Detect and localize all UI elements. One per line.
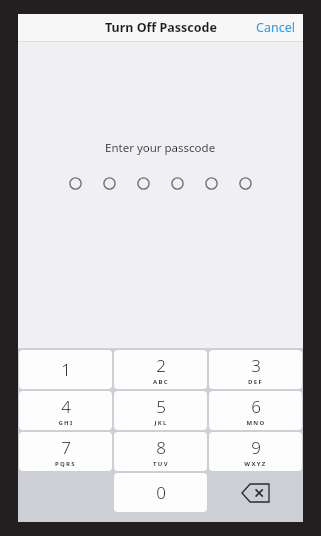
staticText: 6 [251,395,261,418]
staticText: 1 [61,358,71,381]
staticText: 9 [251,436,261,459]
button[interactable]: 1 [19,350,112,389]
staticText: Turn Off Passcode [105,19,217,36]
staticText: PQRS [55,460,76,468]
staticText: 4 [61,395,71,418]
button[interactable]: 2 [114,350,207,389]
staticText: 0 [156,481,166,504]
staticText: TUV [153,460,169,468]
staticText: ABC [153,378,169,386]
button[interactable]: 5 [114,391,207,430]
button[interactable]: 8 [114,432,207,471]
button[interactable]: 6 [209,391,302,430]
staticText: WXYZ [244,460,267,468]
button[interactable]: 7 [19,432,112,471]
staticText: MNO [246,419,266,427]
button[interactable]: Delete [208,472,303,513]
staticText: 7 [61,436,71,459]
button[interactable]: 4 [19,391,112,430]
staticText: 3 [251,354,261,377]
button[interactable]: 3 [209,350,302,389]
button[interactable]: 0 [114,473,207,512]
staticText: Enter your passcode [105,140,216,156]
staticText: 2 [156,354,166,377]
button[interactable]: 9 [209,432,302,471]
staticText: 8 [156,436,166,459]
staticText: 5 [156,395,166,418]
staticText: Cancel [256,19,295,36]
staticText: DEF [248,378,263,386]
button[interactable]: Cancel [248,14,303,41]
staticText: GHI [58,419,74,427]
staticText: JKL [154,419,168,427]
